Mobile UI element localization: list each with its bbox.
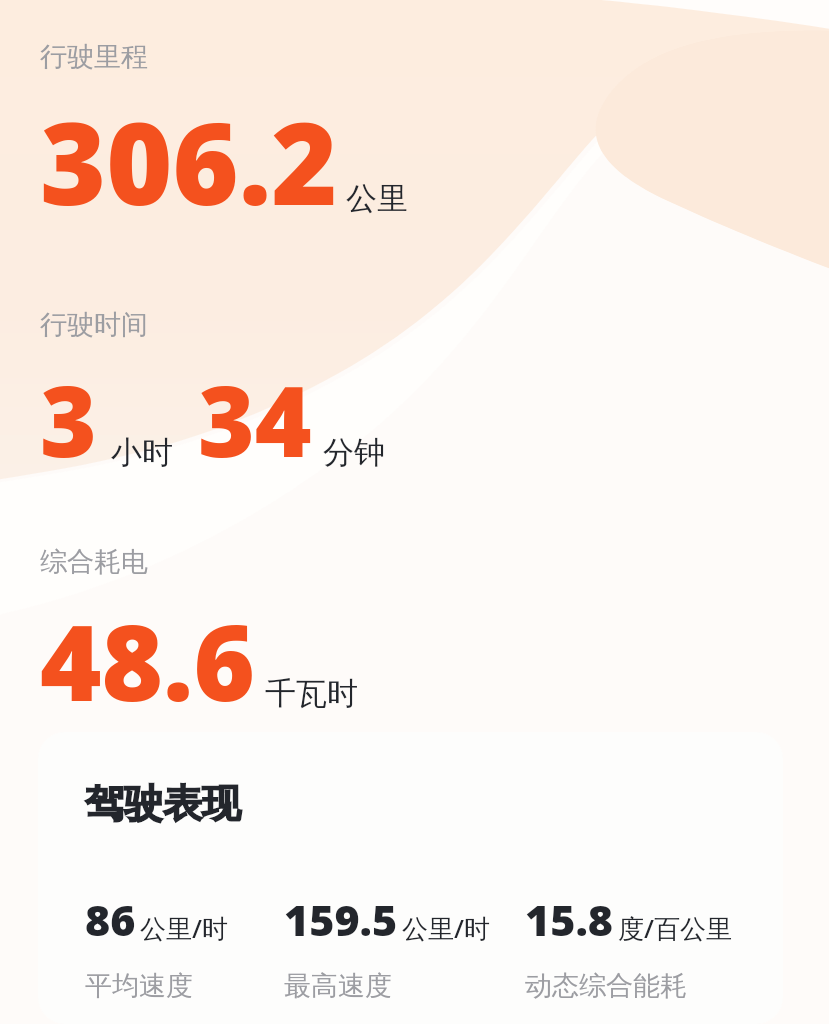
staticText: 159.5: [284, 890, 398, 949]
staticText: 34: [198, 353, 312, 485]
staticText: 平均速度: [85, 969, 193, 1003]
staticText: 公里/时: [140, 910, 229, 946]
staticText: 小时: [111, 433, 173, 472]
staticText: 分钟: [323, 433, 385, 472]
staticText: 综合耗电: [40, 545, 148, 579]
staticText: 86: [85, 890, 136, 949]
button[interactable]: 159.5: [284, 890, 525, 1003]
staticText: 驾驶表现: [85, 779, 241, 828]
button[interactable]: 15.8: [525, 890, 783, 1003]
staticText: 3: [40, 353, 97, 485]
staticText: 行驶里程: [40, 40, 148, 74]
staticText: 公里/时: [402, 910, 491, 946]
button[interactable]: 驾驶表现: [38, 732, 783, 1024]
staticText: 最高速度: [284, 969, 392, 1003]
staticText: 15.8: [525, 890, 614, 949]
staticText: 动态综合能耗: [525, 969, 687, 1003]
staticText: 48.6: [40, 589, 255, 732]
button[interactable]: 86: [85, 890, 284, 1003]
staticText: 306.2: [40, 84, 338, 238]
staticText: 千瓦时: [265, 674, 358, 713]
staticText: 度/百公里: [618, 910, 733, 946]
staticText: 行驶时间: [40, 308, 148, 342]
staticText: 公里: [346, 179, 408, 218]
